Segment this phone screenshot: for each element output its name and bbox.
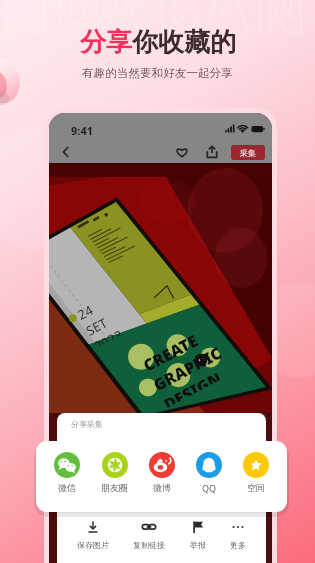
- staticText: 24: [74, 301, 96, 324]
- staticText: GRAPHIC: [150, 341, 226, 396]
- button[interactable]: Back: [57, 143, 75, 161]
- staticText: 朋友圈: [101, 482, 128, 493]
- button[interactable]: 空间: [243, 452, 269, 493]
- staticText: 采集: [240, 148, 256, 158]
- button[interactable]: QQ: [196, 452, 222, 494]
- staticText: CREATE: [139, 329, 202, 376]
- staticText: 有趣的当然要和好友一起分享: [82, 66, 233, 81]
- button[interactable]: 保存图片: [77, 520, 109, 550]
- staticText: 举报: [190, 540, 206, 550]
- staticText: 微博: [153, 482, 171, 493]
- staticText: 分享: [80, 26, 132, 59]
- button[interactable]: 微博: [149, 452, 175, 493]
- staticText: SET: [83, 313, 111, 340]
- staticText: 你收藏的: [132, 26, 236, 59]
- button[interactable]: 更多: [230, 520, 246, 550]
- button[interactable]: 微信: [54, 452, 80, 493]
- button[interactable]: 采集: [231, 145, 265, 160]
- staticText: 空间: [247, 482, 265, 493]
- button[interactable]: 复制链接: [133, 520, 165, 550]
- button[interactable]: 朋友圈: [101, 452, 128, 493]
- staticText: DESIGN: [160, 367, 221, 408]
- button[interactable]: Share: [203, 143, 221, 161]
- staticText: HUABAN: [0, 0, 315, 50]
- staticText: QQ: [202, 482, 217, 494]
- staticText: 微信: [58, 482, 76, 493]
- button[interactable]: 举报: [190, 520, 206, 550]
- staticText: 9:41: [71, 123, 93, 138]
- staticText: 分享采集: [71, 419, 103, 429]
- staticText: 2023: [91, 326, 122, 348]
- button[interactable]: Like: [173, 143, 191, 161]
- staticText: 保存图片: [77, 540, 109, 550]
- staticText: 复制链接: [133, 540, 165, 550]
- staticText: 更多: [230, 540, 246, 550]
